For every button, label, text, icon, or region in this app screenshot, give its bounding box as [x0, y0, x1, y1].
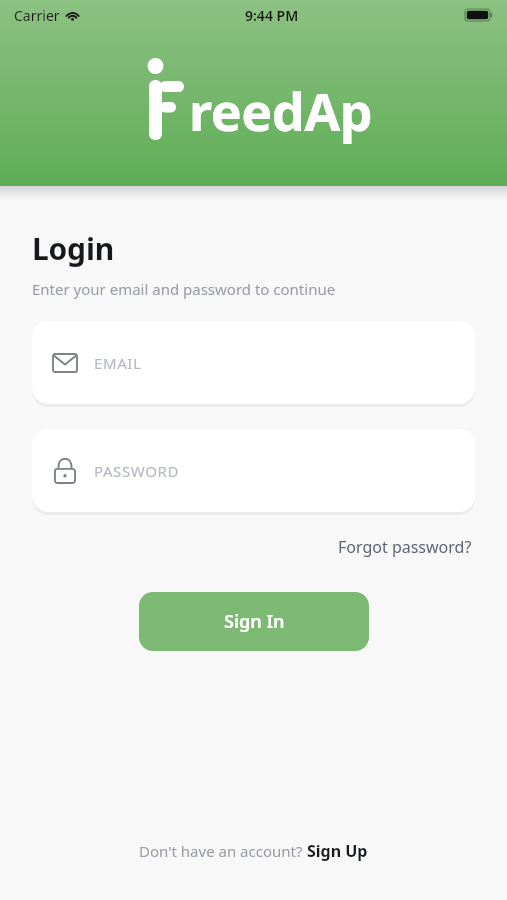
staticText: Sign In — [224, 609, 285, 634]
staticText: Login — [32, 228, 114, 269]
button[interactable]: Forgot password? — [334, 532, 476, 562]
other: FreedAp logo — [135, 56, 187, 146]
button[interactable]: Password — [32, 429, 475, 512]
staticText: Carrier — [14, 6, 60, 25]
staticText: Don't have an account? — [139, 841, 307, 861]
staticText: reedAp — [189, 75, 373, 146]
button[interactable]: Email — [32, 321, 475, 404]
staticText: Sign Up — [307, 840, 368, 862]
button[interactable]: Sign In — [139, 592, 369, 651]
other: Password — [54, 458, 76, 484]
staticText: Forgot password? — [338, 536, 472, 558]
other: Email — [52, 353, 78, 373]
staticText: Enter your email and password to continu… — [32, 279, 336, 299]
staticText: EMAIL — [94, 353, 142, 373]
staticText: PASSWORD — [94, 461, 179, 481]
button[interactable]: Sign Up — [307, 840, 368, 862]
staticText: 9:44 PM — [245, 6, 299, 25]
